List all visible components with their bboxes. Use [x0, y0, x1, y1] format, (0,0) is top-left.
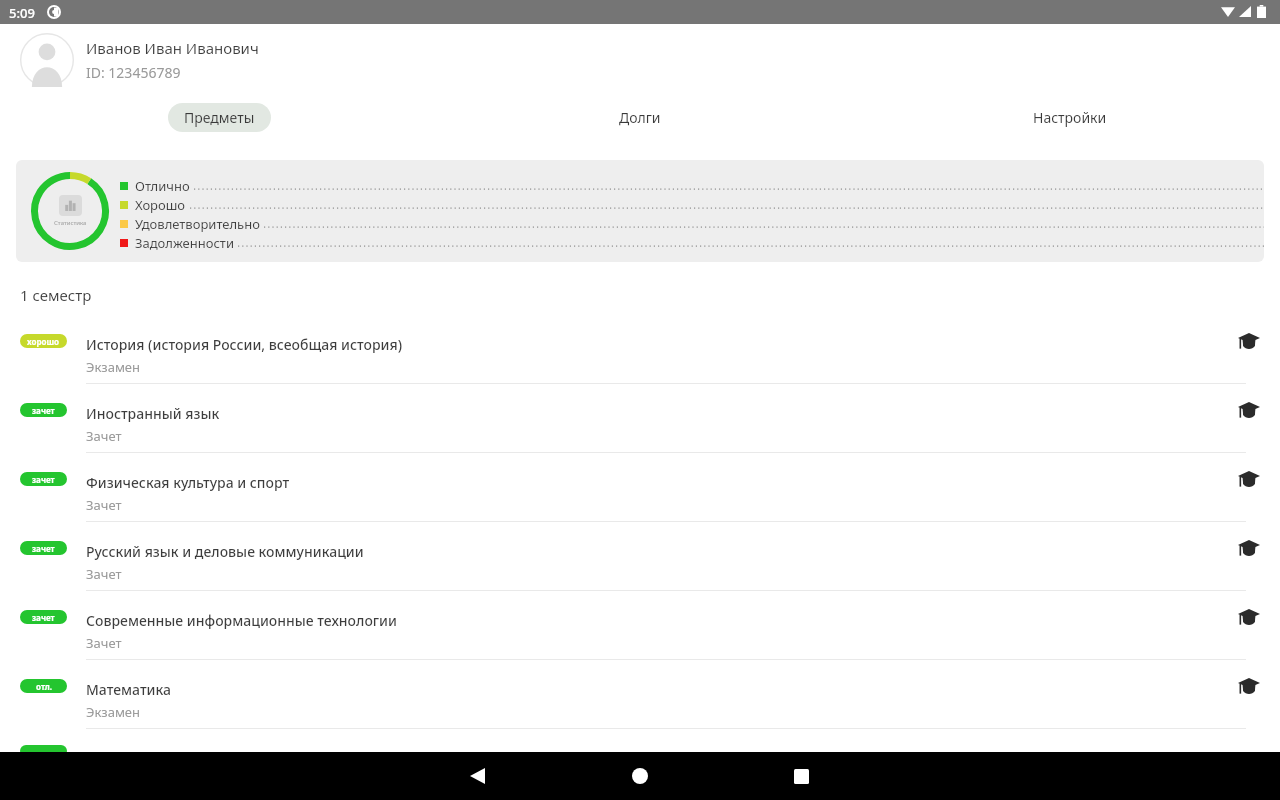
staticText: Экзамен — [86, 358, 141, 376]
button[interactable]: зачет — [0, 602, 1280, 671]
button[interactable]: Долги — [603, 103, 677, 132]
staticText: Удовлетворительно — [135, 215, 260, 233]
staticText: Отлично — [135, 177, 190, 195]
staticText: Экзамен — [86, 703, 141, 721]
button[interactable]: Оценки — [1232, 326, 1280, 382]
staticText: Математика — [86, 680, 171, 699]
staticText: Иванов Иван Иванович — [86, 38, 259, 58]
button[interactable]: отл. — [0, 671, 1280, 740]
button[interactable]: Recents — [777, 752, 825, 800]
staticText: зачет — [32, 474, 55, 485]
staticText: Русский язык и деловые коммуникации — [86, 542, 364, 561]
staticText: хорошо — [27, 336, 60, 347]
staticText: Иностранный язык — [86, 404, 220, 423]
button[interactable]: Оценки — [1232, 464, 1280, 520]
staticText: зачет — [32, 612, 55, 623]
staticText: Предметы — [184, 108, 255, 127]
button[interactable]: Back — [453, 752, 501, 800]
button[interactable]: зачет — [0, 533, 1280, 602]
staticText: Зачет — [86, 496, 122, 514]
staticText: Зачет — [86, 565, 122, 583]
button[interactable]: Оценки — [1232, 395, 1280, 451]
staticText: История (история России, всеобщая истори… — [86, 335, 403, 354]
staticText: Физическая культура и спорт — [86, 473, 290, 492]
staticText: зачет — [32, 543, 55, 554]
button[interactable]: Предметы — [168, 103, 271, 132]
staticText: Современные информационные технологии — [86, 611, 397, 630]
staticText: отл. — [36, 681, 52, 692]
staticText: Долги — [619, 108, 661, 127]
button[interactable]: зачет — [0, 395, 1280, 464]
staticText: Настройки — [1033, 108, 1107, 127]
staticText: Хорошо — [135, 196, 186, 214]
staticText: ID: 123456789 — [86, 63, 181, 82]
button[interactable]: хорошо — [0, 326, 1280, 395]
staticText: 1 семестр — [20, 285, 92, 305]
staticText: зачет — [32, 405, 55, 416]
button[interactable]: Home — [616, 752, 664, 800]
staticText: Зачет — [86, 427, 122, 445]
staticText: Зачет — [86, 634, 122, 652]
button[interactable]: Оценки — [1232, 671, 1280, 727]
staticText: Задолженности — [135, 234, 234, 252]
button[interactable]: Статистика — [16, 160, 1264, 262]
button[interactable]: Оценки — [1232, 533, 1280, 589]
button[interactable]: Настройки — [1017, 103, 1123, 132]
staticText: 5:09 — [9, 4, 35, 22]
staticText: Статистика — [54, 219, 87, 227]
button[interactable]: Оценки — [1232, 602, 1280, 658]
button[interactable]: зачет — [0, 464, 1280, 533]
